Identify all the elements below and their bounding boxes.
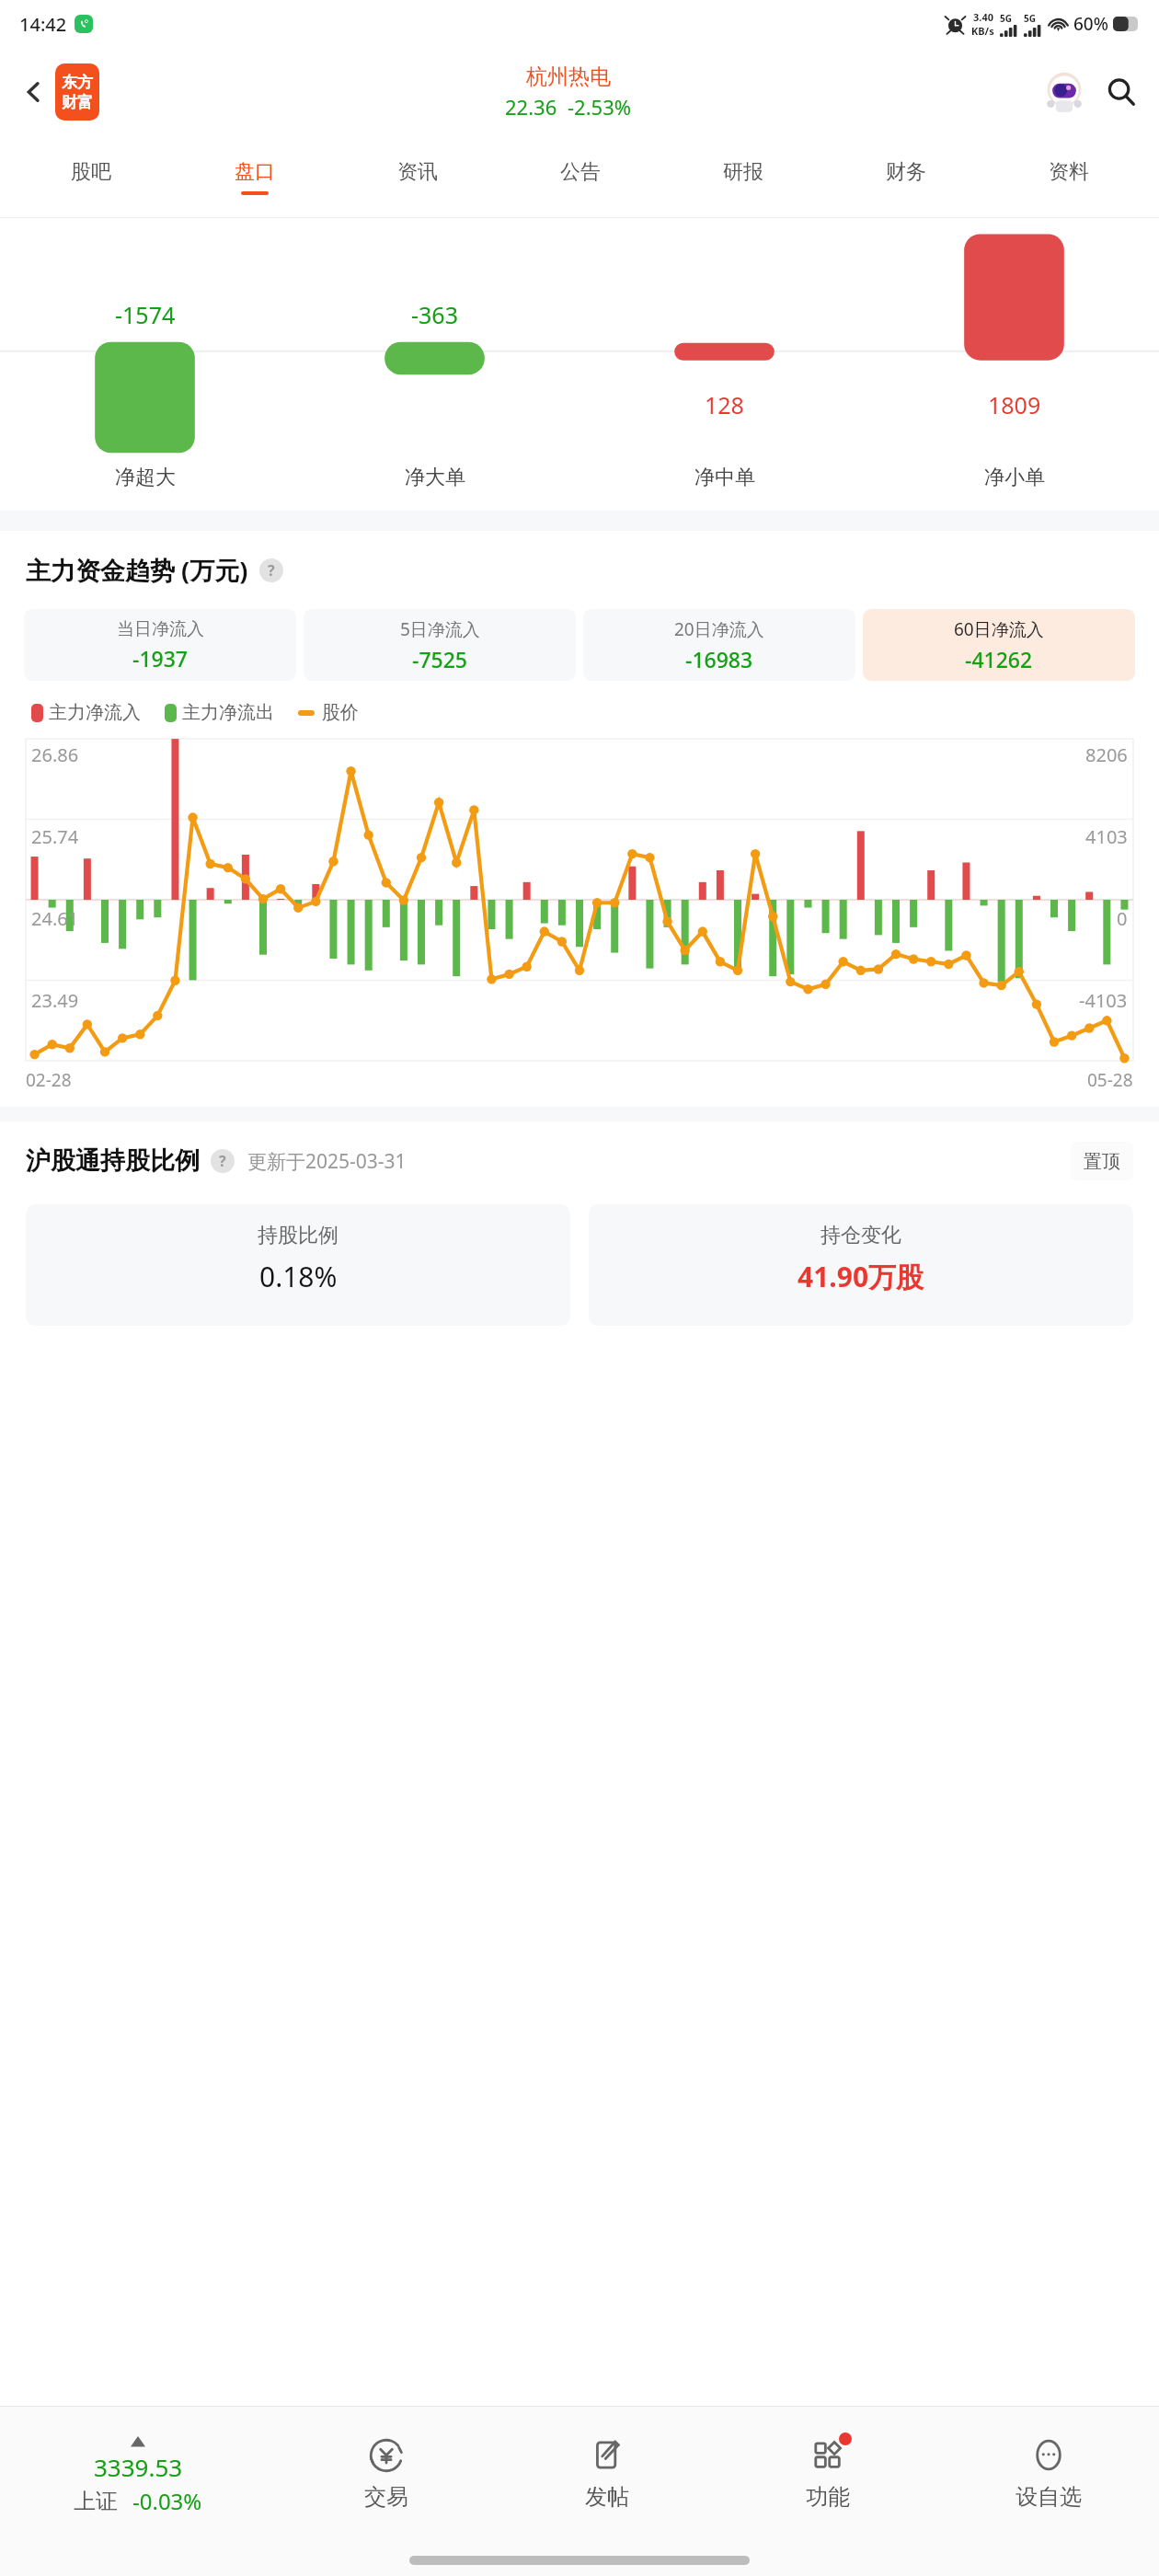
button[interactable]: 置顶 (1071, 1142, 1133, 1180)
staticText: KB/s (971, 24, 994, 38)
button[interactable]: 20日净流入 (583, 609, 855, 681)
button[interactable]: 帮助 (259, 558, 283, 582)
staticText: 交易 (364, 2483, 408, 2511)
staticText: 净小单 (984, 465, 1045, 490)
staticText: ? (268, 560, 275, 581)
staticText: 128 (705, 389, 744, 420)
staticText: -2.53% (568, 93, 632, 121)
button[interactable]: Back (13, 71, 55, 113)
button[interactable]: Search (1096, 67, 1146, 117)
button[interactable]: 持股比例 (26, 1204, 570, 1326)
staticText: 设自选 (1016, 2483, 1082, 2511)
staticText: 主力净流入 (49, 701, 141, 724)
staticText: 0 (1117, 906, 1128, 931)
staticText: -16983 (685, 645, 753, 673)
staticText: 股价 (322, 701, 359, 724)
button[interactable]: 1809 (869, 218, 1159, 511)
button[interactable]: 研报 (661, 136, 824, 217)
button[interactable]: AI助手 (1038, 65, 1091, 119)
staticText: 主力资金趋势 (万元) (26, 553, 248, 587)
staticText: -4103 (1079, 988, 1128, 1013)
staticText: 25.74 (31, 824, 79, 849)
staticText: -0.03% (132, 2486, 202, 2516)
button[interactable]: 资料 (987, 136, 1150, 217)
staticText: 20日净流入 (674, 617, 764, 641)
staticText: 0.18% (259, 1258, 338, 1295)
staticText: 更新于2025-03-31 (247, 1148, 407, 1175)
staticText: 4103 (1085, 824, 1128, 849)
staticText: 02-28 (26, 1068, 72, 1092)
button[interactable]: 持仓变化 (589, 1204, 1133, 1326)
button[interactable]: 东方财富 (55, 63, 99, 121)
button[interactable]: 交易 (276, 2407, 497, 2545)
staticText: 净超大 (115, 465, 176, 490)
staticText: 沪股通持股比例 (26, 1145, 200, 1177)
button[interactable]: -363 (290, 218, 579, 511)
staticText: 股吧 (71, 159, 111, 185)
staticText: 盘口 (235, 159, 275, 185)
staticText: 26.86 (31, 742, 79, 767)
staticText: 功能 (806, 2483, 850, 2511)
staticText: 14:42 (19, 12, 67, 37)
button[interactable]: 财务 (824, 136, 987, 217)
button[interactable]: 股吧 (9, 136, 173, 217)
staticText: 持仓变化 (820, 1223, 901, 1248)
staticText: -363 (411, 299, 458, 330)
staticText: -41262 (965, 645, 1033, 673)
staticText: 资料 (1049, 159, 1089, 185)
staticText: 3339.53 (94, 2451, 183, 2483)
button[interactable]: 功能 (717, 2407, 938, 2545)
button[interactable]: 发帖 (497, 2407, 717, 2545)
staticText: 3.40 (973, 10, 993, 24)
button[interactable]: 5日净流入 (304, 609, 576, 681)
staticText: -1574 (115, 299, 176, 330)
staticText: 5G (1024, 12, 1036, 25)
staticText: 22.36 (505, 93, 557, 121)
staticText: 主力净流出 (182, 701, 274, 724)
button[interactable]: 3339.53 (0, 2407, 276, 2545)
button[interactable]: 60日净流入 (863, 609, 1135, 681)
staticText: 置顶 (1084, 1150, 1120, 1173)
staticText: 41.90万股 (798, 1258, 924, 1295)
staticText: 财富 (62, 93, 93, 112)
staticText: 杭州热电 (526, 63, 611, 90)
button[interactable]: 帮助 (211, 1149, 235, 1173)
staticText: 净大单 (405, 465, 465, 490)
staticText: 东方 (62, 73, 93, 92)
staticText: -7525 (412, 645, 468, 673)
button[interactable]: 128 (579, 218, 869, 511)
staticText: 财务 (886, 159, 926, 185)
button[interactable]: 设自选 (938, 2407, 1159, 2545)
staticText: 5日净流入 (400, 617, 480, 641)
staticText: 当日净流入 (117, 618, 204, 640)
staticText: 资讯 (397, 159, 438, 185)
staticText: 发帖 (585, 2483, 629, 2511)
button[interactable]: 资讯 (336, 136, 499, 217)
staticText: 5G (1000, 12, 1012, 25)
button[interactable]: 当日净流入 (24, 609, 296, 681)
staticText: ? (219, 1151, 226, 1171)
staticText: 上证 (74, 2488, 118, 2515)
staticText: 23.49 (31, 988, 79, 1013)
staticText: 1809 (988, 389, 1041, 420)
staticText: 净中单 (694, 465, 755, 490)
staticText: 研报 (723, 159, 763, 185)
button[interactable]: 主力资金趋势 (万元) (26, 553, 1133, 587)
staticText: 公告 (560, 159, 601, 185)
staticText: 持股比例 (258, 1223, 339, 1248)
staticText: 60% (1073, 12, 1108, 36)
staticText: 05-28 (1087, 1068, 1133, 1092)
staticText: 8206 (1085, 742, 1128, 767)
staticText: -1937 (132, 644, 189, 673)
staticText: 60日净流入 (954, 617, 1044, 641)
button[interactable]: 公告 (499, 136, 661, 217)
button[interactable]: 盘口 (173, 136, 336, 217)
staticText: 24.61 (31, 906, 79, 931)
button[interactable]: -1574 (0, 218, 290, 511)
